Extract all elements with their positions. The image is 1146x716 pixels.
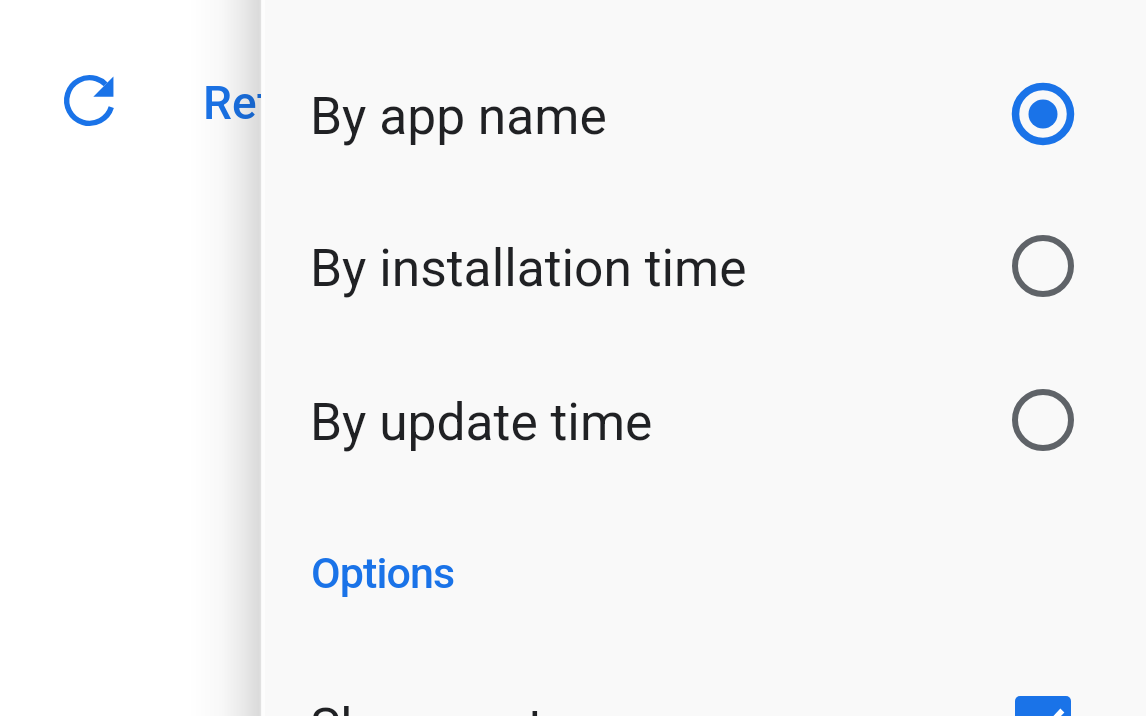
button[interactable]: Show system apps: [261, 649, 1146, 716]
button[interactable]: Refresh: [182, 53, 384, 153]
staticText: Options: [311, 548, 455, 598]
staticText: By installation time: [310, 238, 747, 298]
staticText: Refresh: [203, 76, 363, 130]
button[interactable]: By installation time: [261, 190, 1146, 342]
button[interactable]: By app name: [261, 38, 1146, 190]
button[interactable]: By update time: [261, 344, 1146, 496]
staticText: By app name: [310, 86, 607, 146]
staticText: By update time: [310, 392, 653, 452]
button[interactable]: Options: [261, 533, 1146, 617]
button[interactable]: Refresh: [39, 51, 139, 151]
staticText: Show system apps: [310, 697, 742, 716]
